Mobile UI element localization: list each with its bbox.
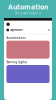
staticText: Set it and forget it	[15, 11, 41, 15]
staticText: Automation	[8, 2, 48, 11]
staticText: My Home	[10, 28, 23, 32]
staticText: Automations	[6, 36, 25, 40]
staticText: Evening Lights	[6, 60, 26, 64]
